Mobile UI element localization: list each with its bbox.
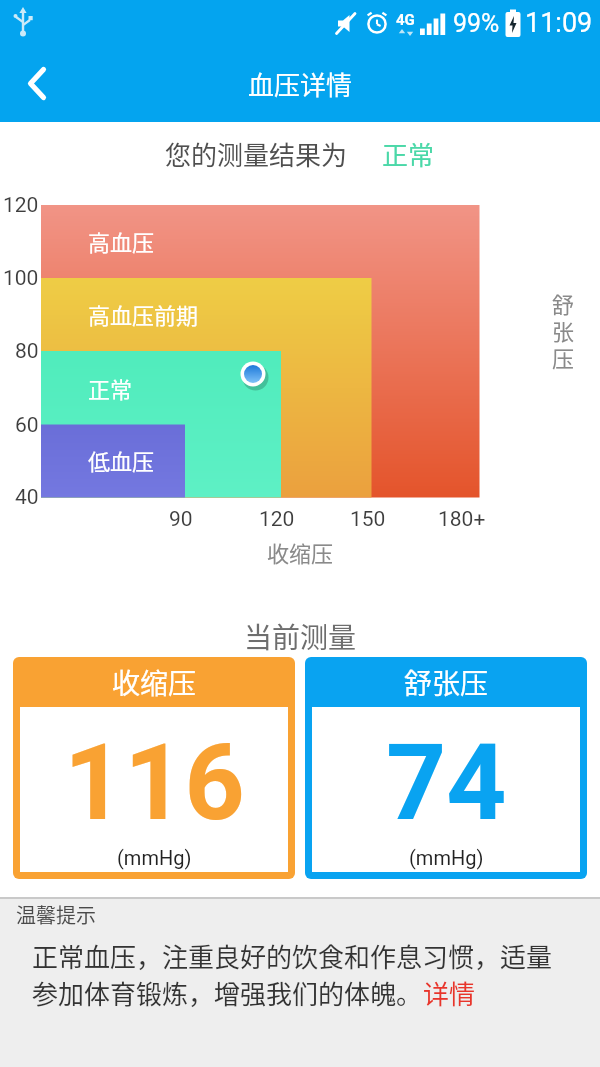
staticText: 正常 <box>382 135 435 173</box>
staticText: 150 <box>350 507 386 532</box>
staticText: 正常血压，注重良好的饮食和作息习惯，适量 <box>32 937 553 975</box>
button[interactable]: 舒张压 <box>305 657 587 879</box>
staticText: 4G <box>396 11 415 29</box>
staticText: 99% <box>453 9 500 38</box>
staticText: 100 <box>3 266 39 291</box>
staticText: 低血压 <box>88 444 155 476</box>
staticText: 116 <box>64 722 245 845</box>
staticText: (mmHg) <box>409 846 484 869</box>
staticText: 高血压前期 <box>88 298 199 330</box>
staticText: 74 <box>386 722 507 845</box>
staticText: 舒张压 <box>404 662 489 703</box>
staticText: (mmHg) <box>117 846 192 869</box>
staticText: 60 <box>15 413 39 438</box>
staticText: 180+ <box>438 507 486 532</box>
staticText: 120 <box>3 193 39 218</box>
staticText: 90 <box>169 507 193 532</box>
staticText: 120 <box>259 507 295 532</box>
staticText: 参加体育锻炼，增强我们的体魄。 <box>32 974 423 1012</box>
staticText: 温馨提示 <box>16 900 96 929</box>
button[interactable] <box>10 56 64 110</box>
button[interactable]: 详情 <box>423 974 476 1012</box>
staticText: 11:09 <box>525 7 593 39</box>
staticText: 您的测量结果为 <box>165 135 348 173</box>
staticText: 80 <box>15 339 39 364</box>
staticText: 当前测量 <box>244 616 357 657</box>
button[interactable]: 收缩压 <box>13 657 295 879</box>
staticText: 血压详情 <box>248 65 353 103</box>
staticText: 收缩压 <box>267 536 334 568</box>
staticText: 收缩压 <box>112 662 197 703</box>
staticText: 舒 张 压 <box>552 287 575 373</box>
staticText: 正常 <box>88 372 133 404</box>
staticText: 高血压 <box>88 225 155 257</box>
staticText: 40 <box>15 485 39 510</box>
